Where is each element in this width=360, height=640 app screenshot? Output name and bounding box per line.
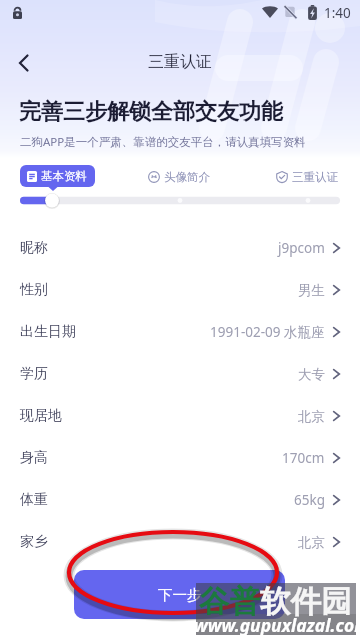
staticText: 昵称: [20, 239, 48, 257]
button[interactable]: 出生日期: [0, 311, 360, 353]
staticText: 大专: [298, 366, 325, 383]
staticText: 体重: [20, 491, 48, 509]
button[interactable]: 学历: [0, 353, 360, 395]
staticText: 出生日期: [20, 323, 76, 341]
staticText: 北京: [298, 534, 325, 551]
staticText: 学历: [20, 365, 48, 383]
button[interactable]: 性别: [0, 269, 360, 311]
button[interactable]: 基本资料: [20, 165, 95, 187]
button[interactable]: Back: [2, 41, 46, 85]
staticText: 北京: [298, 408, 325, 425]
staticText: 完善三步解锁全部交友功能: [19, 98, 283, 126]
button[interactable]: 现居地: [0, 395, 360, 437]
staticText: 身高: [20, 449, 48, 467]
staticText: 基本资料: [41, 169, 87, 183]
staticText: 三重认证: [148, 52, 212, 72]
staticText: 男生: [298, 282, 325, 299]
staticText: 二狗APP是一个严肃、靠谱的交友平台，请认真填写资料: [20, 134, 306, 150]
staticText: 三重认证: [292, 170, 338, 184]
staticText: 性别: [20, 281, 48, 299]
button[interactable]: 三重认证: [276, 170, 338, 184]
staticText: j9pcom: [278, 239, 325, 257]
staticText: 65kg: [294, 491, 325, 509]
button[interactable]: 身高: [0, 437, 360, 479]
staticText: 软件园: [260, 583, 352, 621]
staticText: 1:40: [324, 4, 351, 22]
staticText: 家乡: [20, 533, 48, 551]
button[interactable]: 下一步: [74, 570, 285, 619]
staticText: www.gupuxlazal.com: [194, 613, 360, 637]
staticText: 头像简介: [164, 170, 210, 184]
button[interactable]: 头像简介: [148, 170, 210, 184]
button[interactable]: 昵称: [0, 227, 360, 269]
button[interactable]: 家乡: [0, 521, 360, 563]
staticText: 现居地: [20, 407, 62, 425]
staticText: 谷普: [199, 583, 260, 621]
staticText: 170cm: [282, 449, 325, 467]
staticText: 1991-02-09 水瓶座: [210, 323, 325, 341]
button[interactable]: 体重: [0, 479, 360, 521]
staticText: 下一步: [158, 586, 202, 604]
